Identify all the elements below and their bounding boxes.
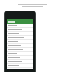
button[interactable] bbox=[7, 19, 33, 24]
button[interactable] bbox=[7, 56, 33, 59]
button[interactable] bbox=[7, 52, 33, 55]
button[interactable] bbox=[7, 24, 33, 27]
button[interactable] bbox=[7, 44, 33, 47]
button[interactable] bbox=[7, 32, 33, 35]
button[interactable] bbox=[7, 36, 33, 39]
button[interactable] bbox=[7, 28, 33, 31]
button[interactable] bbox=[7, 40, 33, 43]
button[interactable] bbox=[7, 64, 33, 67]
button[interactable] bbox=[7, 60, 33, 63]
button[interactable] bbox=[7, 48, 33, 51]
